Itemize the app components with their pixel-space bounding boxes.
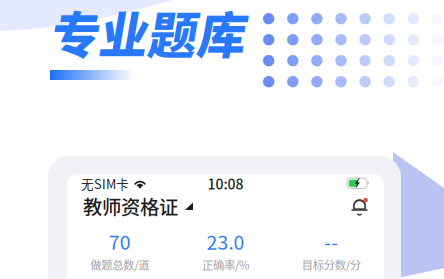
staticText: 无SIM卡 (81, 174, 129, 193)
staticText: 10:08 (207, 173, 243, 194)
staticText: 目标分数/分 (302, 256, 361, 273)
staticText: 专业题库 (51, 0, 247, 67)
staticText: 教师资格证 (83, 192, 178, 220)
staticText: -- (324, 227, 338, 255)
button[interactable]: Notifications (351, 196, 368, 216)
staticText: 正确率/% (202, 256, 249, 273)
button[interactable]: 教师资格证 (83, 192, 193, 220)
staticText: 70 (109, 227, 131, 255)
staticText: 23.0 (206, 227, 244, 255)
staticText: 做题总数/道 (90, 256, 149, 273)
